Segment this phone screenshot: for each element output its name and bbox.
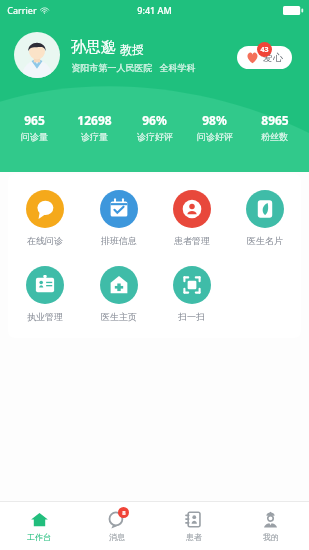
button[interactable]: 我的 xyxy=(232,506,309,546)
staticText: 9:41 AM xyxy=(137,4,172,16)
staticText: 诊疗量 xyxy=(81,131,108,142)
staticText: 患者 xyxy=(186,532,202,542)
staticText: 965 xyxy=(24,112,45,128)
button[interactable]: 执业管理 xyxy=(8,264,82,324)
button[interactable]: 12698 xyxy=(66,112,123,142)
staticText: 诊疗好评 xyxy=(137,131,173,142)
staticText: 医生名片 xyxy=(247,235,283,246)
staticText: 98% xyxy=(202,112,227,128)
staticText: 96% xyxy=(142,112,167,128)
staticText: 扫一扫 xyxy=(178,311,205,322)
staticText: 患者管理 xyxy=(174,235,210,246)
staticText: 医生主页 xyxy=(101,311,137,322)
button[interactable]: 爱心 xyxy=(237,41,295,69)
staticText: 12698 xyxy=(77,112,112,128)
button[interactable]: 96% xyxy=(126,112,183,142)
staticText: 工作台 xyxy=(27,532,51,542)
button[interactable]: 工作台 xyxy=(0,506,78,546)
staticText: 爱心 xyxy=(263,51,283,64)
staticText: 我的 xyxy=(263,532,279,542)
staticText: 43 xyxy=(260,45,269,55)
button[interactable]: 8 xyxy=(78,506,155,546)
staticText: Carrier xyxy=(7,4,37,16)
staticText: 问诊量 xyxy=(21,131,48,142)
button[interactable]: 患者 xyxy=(155,506,232,546)
staticText: 执业管理 xyxy=(27,311,63,322)
button[interactable]: 98% xyxy=(186,112,243,142)
button[interactable]: 排班信息 xyxy=(82,188,155,248)
button[interactable]: 医生主页 xyxy=(82,264,155,324)
staticText: 排班信息 xyxy=(101,235,137,246)
staticText: 资阳市第一人民医院 全科学科 xyxy=(71,61,196,73)
staticText: 教授 xyxy=(120,42,144,57)
staticText: 问诊好评 xyxy=(197,131,233,142)
staticText: 孙思邈 xyxy=(71,38,116,57)
staticText: 8965 xyxy=(261,112,289,128)
button[interactable]: 扫一扫 xyxy=(155,264,228,324)
button[interactable]: 患者管理 xyxy=(155,188,228,248)
staticText: 在线问诊 xyxy=(27,235,63,246)
staticText: 粉丝数 xyxy=(261,131,288,142)
button[interactable]: 965 xyxy=(6,112,63,142)
button[interactable]: 医生名片 xyxy=(228,188,301,248)
button[interactable]: 8965 xyxy=(246,112,303,142)
staticText: 8 xyxy=(122,509,126,517)
button[interactable]: 在线问诊 xyxy=(8,188,82,248)
staticText: 消息 xyxy=(109,532,125,542)
